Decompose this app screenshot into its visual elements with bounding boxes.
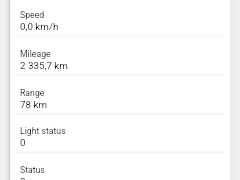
button[interactable]: Speed: [11, 0, 230, 36]
staticText: 0: [20, 176, 26, 180]
staticText: Speed: [20, 10, 45, 20]
staticText: Mileage: [20, 49, 51, 59]
button[interactable]: Range: [11, 75, 230, 114]
staticText: 0: [20, 137, 26, 148]
staticText: Range: [20, 88, 45, 98]
staticText: Status: [20, 165, 45, 175]
staticText: 78 km: [20, 99, 47, 110]
staticText: 2 335,7 km: [20, 60, 68, 71]
button[interactable]: Status: [11, 152, 230, 180]
button[interactable]: Mileage: [11, 36, 230, 75]
button[interactable]: Light status: [11, 113, 230, 152]
staticText: Light status: [20, 126, 66, 136]
staticText: 0,0 km/h: [20, 21, 59, 32]
